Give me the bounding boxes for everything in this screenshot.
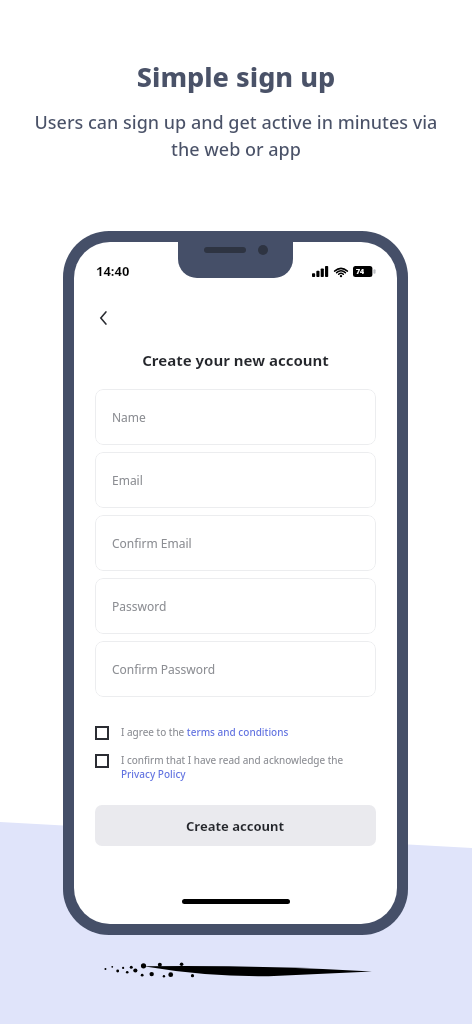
staticText: 74	[356, 267, 365, 277]
staticText: Users can sign up and get active in minu…	[28, 110, 444, 161]
staticText: Simple sign up	[28, 58, 444, 95]
button[interactable]: I agree to the terms and conditions	[95, 725, 376, 739]
button[interactable]: Email	[95, 452, 376, 508]
staticText: Email	[112, 472, 143, 488]
staticText: 14:40	[96, 262, 130, 280]
staticText: Password	[112, 598, 167, 614]
button[interactable]: I confirm that I have read and acknowled…	[95, 753, 376, 781]
button[interactable]: Create account	[95, 805, 376, 846]
staticText: Create your new account	[95, 350, 376, 370]
staticText: I agree to the terms and conditions	[121, 725, 289, 739]
staticText: Confirm Password	[112, 661, 216, 677]
button[interactable]: Password	[95, 578, 376, 634]
staticText: Name	[112, 409, 146, 425]
staticText: Create account	[186, 817, 285, 835]
staticText: I confirm that I have read and acknowled…	[121, 753, 376, 781]
button[interactable]: Confirm Email	[95, 515, 376, 571]
button[interactable]: Confirm Password	[95, 641, 376, 697]
button[interactable]: Name	[95, 389, 376, 445]
button[interactable]: Back	[86, 300, 122, 336]
staticText: Confirm Email	[112, 535, 192, 551]
